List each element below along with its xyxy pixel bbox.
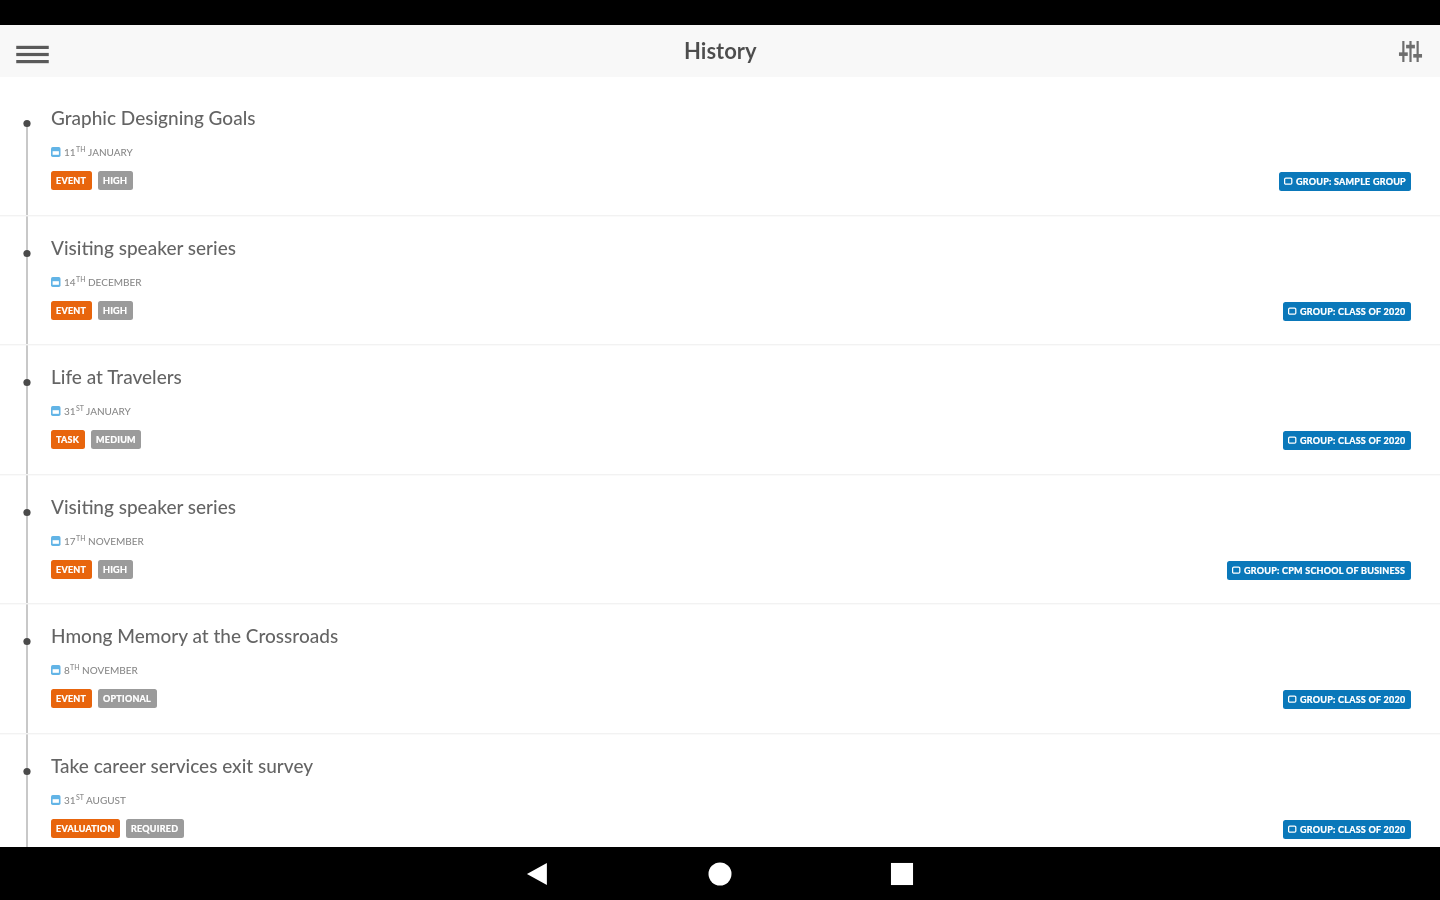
staticText: EVALUATION: [56, 823, 115, 834]
button[interactable]: GROUP: CLASS OF 2020: [1288, 690, 1406, 709]
button[interactable]: EVENT: [56, 171, 87, 190]
staticText: NOVEMBER: [82, 664, 138, 676]
staticText: Graphic Designing Goals: [51, 106, 256, 129]
staticText: HIGH: [103, 305, 128, 316]
button[interactable]: EVALUATION: [56, 819, 115, 838]
staticText: OPTIONAL: [103, 693, 152, 704]
staticText: JANUARY: [86, 405, 131, 417]
staticText: GROUP: SAMPLE GROUP: [1296, 176, 1406, 187]
button[interactable]: Graphic Designing Goals: [0, 85, 1440, 215]
button[interactable]: OPTIONAL: [103, 689, 152, 708]
staticText: TASK: [56, 434, 80, 445]
staticText: ST: [76, 793, 84, 801]
button[interactable]: Take career services exit survey: [0, 733, 1440, 862]
staticText: HIGH: [103, 175, 128, 186]
staticText: Visiting speaker series: [51, 236, 237, 259]
staticText: TH: [76, 275, 86, 283]
button[interactable]: EVENT: [56, 689, 87, 708]
staticText: GROUP: CLASS OF 2020: [1300, 435, 1406, 446]
button[interactable]: HIGH: [103, 171, 128, 190]
button[interactable]: Hmong Memory at the Crossroads: [0, 603, 1440, 733]
staticText: GROUP: CPM SCHOOL OF BUSINESS: [1244, 565, 1406, 576]
staticText: 31: [64, 794, 76, 806]
button[interactable]: Visiting speaker series: [0, 474, 1440, 603]
staticText: ST: [76, 404, 84, 412]
staticText: EVENT: [56, 305, 87, 316]
staticText: Visiting speaker series: [51, 495, 237, 518]
staticText: GROUP: CLASS OF 2020: [1300, 694, 1406, 705]
staticText: GROUP: CLASS OF 2020: [1300, 306, 1406, 317]
button[interactable]: MEDIUM: [96, 430, 136, 449]
staticText: Hmong Memory at the Crossroads: [51, 624, 339, 647]
staticText: 11: [64, 146, 76, 158]
staticText: REQUIRED: [131, 823, 179, 834]
staticText: EVENT: [56, 564, 87, 575]
staticText: NOVEMBER: [88, 535, 144, 547]
staticText: DECEMBER: [88, 276, 142, 288]
button[interactable]: Back: [448, 847, 628, 900]
button[interactable]: Filter: [1388, 29, 1432, 73]
staticText: GROUP: CLASS OF 2020: [1300, 824, 1406, 835]
staticText: MEDIUM: [96, 434, 136, 445]
staticText: History: [684, 37, 757, 63]
staticText: EVENT: [56, 175, 87, 186]
button[interactable]: Home: [630, 847, 810, 900]
button[interactable]: GROUP: CLASS OF 2020: [1288, 431, 1406, 450]
staticText: AUGUST: [86, 794, 126, 806]
staticText: 31: [64, 405, 76, 417]
staticText: 14: [64, 276, 76, 288]
staticText: TH: [76, 145, 86, 153]
staticText: JANUARY: [88, 146, 133, 158]
button[interactable]: REQUIRED: [131, 819, 179, 838]
button[interactable]: GROUP: CLASS OF 2020: [1288, 302, 1406, 321]
button[interactable]: GROUP: CPM SCHOOL OF BUSINESS: [1232, 561, 1406, 580]
button[interactable]: HIGH: [103, 560, 128, 579]
staticText: TH: [70, 663, 80, 671]
button[interactable]: EVENT: [56, 560, 87, 579]
staticText: 8: [64, 664, 70, 676]
staticText: Take career services exit survey: [51, 754, 314, 777]
button[interactable]: Recent apps: [812, 847, 992, 900]
staticText: EVENT: [56, 693, 87, 704]
staticText: HIGH: [103, 564, 128, 575]
button[interactable]: HIGH: [103, 301, 128, 320]
staticText: TH: [76, 534, 86, 542]
button[interactable]: TASK: [56, 430, 80, 449]
button[interactable]: EVENT: [56, 301, 87, 320]
button[interactable]: GROUP: SAMPLE GROUP: [1284, 172, 1406, 191]
button[interactable]: Life at Travelers: [0, 344, 1440, 474]
button[interactable]: GROUP: CLASS OF 2020: [1288, 820, 1406, 839]
button[interactable]: Visiting speaker series: [0, 215, 1440, 344]
staticText: Life at Travelers: [51, 365, 182, 388]
button[interactable]: Navigation menu: [10, 29, 54, 73]
staticText: 17: [64, 535, 76, 547]
